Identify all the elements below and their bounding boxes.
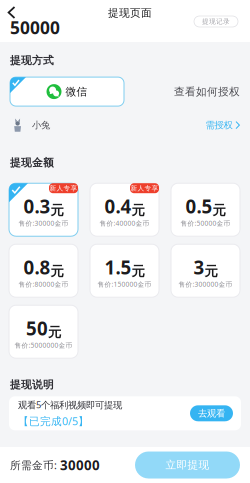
staticText: 0.8: [23, 255, 50, 280]
staticText: 50: [26, 316, 48, 341]
staticText: 售价:80000金币: [18, 280, 68, 289]
staticText: 售价:150000金币: [97, 280, 151, 289]
staticText: 3: [193, 255, 204, 280]
staticText: 元: [212, 202, 225, 219]
staticText: 元: [50, 202, 63, 219]
staticText: 【已完成0/5】: [18, 414, 89, 428]
staticText: 50000: [10, 16, 60, 39]
staticText: 微信: [65, 85, 87, 98]
button[interactable]: 1.5: [90, 244, 159, 297]
button[interactable]: 需授权: [205, 114, 250, 136]
staticText: 新人专享: [130, 184, 158, 192]
staticText: 元: [204, 263, 217, 280]
staticText: 提现页面: [108, 6, 152, 19]
staticText: 新人专享: [49, 184, 77, 192]
staticText: 元: [50, 263, 63, 280]
staticText: 售价:30000金币: [18, 219, 68, 228]
staticText: 元: [131, 202, 144, 219]
staticText: 提现记录: [202, 17, 230, 26]
staticText: 售价:5000000金币: [14, 341, 72, 350]
staticText: 0.3: [23, 194, 50, 219]
button[interactable]: 立即提现: [135, 451, 240, 478]
staticText: 售价:300000金币: [178, 280, 232, 289]
button[interactable]: Back: [0, 0, 25, 24]
staticText: 售价:50000金币: [180, 219, 230, 228]
staticText: 元: [48, 324, 61, 341]
button[interactable]: 0.5: [171, 183, 240, 236]
button[interactable]: 3: [171, 244, 240, 297]
staticText: 提现方式: [10, 54, 54, 67]
button[interactable]: 50: [9, 305, 78, 358]
button[interactable]: 0.8: [9, 244, 78, 297]
button[interactable]: 去观看: [190, 405, 233, 421]
staticText: 元: [131, 263, 144, 280]
button[interactable]: 微信: [10, 77, 124, 106]
button[interactable]: 0.3: [9, 183, 78, 236]
staticText: 去观看: [198, 408, 225, 419]
staticText: 查看如何授权: [174, 85, 240, 98]
staticText: 1.5: [104, 255, 131, 280]
staticText: 立即提现: [165, 458, 209, 471]
staticText: 观看5个福利视频即可提现: [18, 398, 122, 411]
staticText: 小兔: [32, 119, 50, 131]
staticText: 售价:40000金币: [99, 219, 149, 228]
staticText: 0.4: [104, 194, 131, 219]
staticText: 所需金币:: [10, 458, 60, 472]
staticText: 30000: [60, 456, 100, 474]
staticText: 0.5: [185, 194, 212, 219]
button[interactable]: 查看如何授权: [174, 79, 250, 104]
button[interactable]: 0.4: [90, 183, 159, 236]
staticText: 需授权: [205, 119, 232, 131]
staticText: 提现金额: [10, 156, 54, 169]
staticText: 提现说明: [10, 378, 54, 391]
button[interactable]: 提现记录: [194, 16, 238, 27]
